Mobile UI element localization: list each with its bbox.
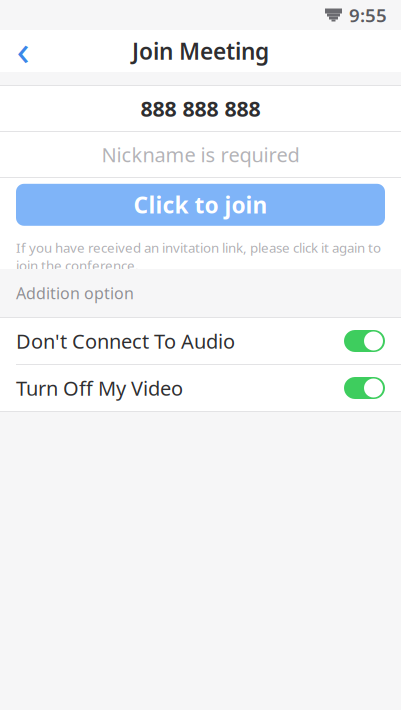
button[interactable]: Don't Connect To Audio — [0, 318, 401, 364]
staticText: Addition option — [16, 282, 134, 304]
staticText: Turn Off My Video — [16, 375, 183, 401]
staticText: 9:55 — [349, 3, 387, 27]
staticText: ‹ — [16, 21, 29, 77]
staticText: Join Meeting — [132, 36, 269, 66]
button[interactable]: Back — [0, 21, 46, 81]
staticText: Nickname is required — [101, 141, 299, 168]
staticText: 888 888 888 — [140, 94, 260, 123]
staticText: Don't Connect To Audio — [16, 328, 235, 354]
button[interactable]: Turn Off My Video — [0, 365, 401, 411]
staticText: If you have received an invitation link,… — [16, 239, 381, 274]
staticText: Click to join — [133, 190, 267, 220]
button[interactable]: Click to join — [16, 184, 385, 226]
